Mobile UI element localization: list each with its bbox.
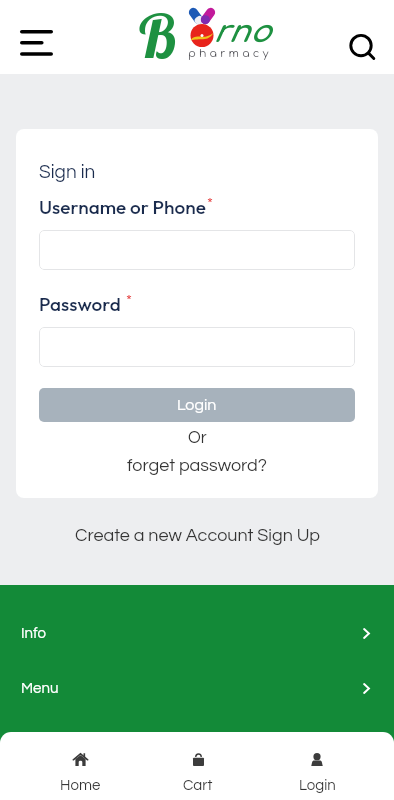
button[interactable]: Login [39,388,355,422]
staticText: * [126,292,132,308]
button[interactable]: forget password? [39,454,355,476]
button[interactable]: Create a new Account Sign Up [0,520,394,550]
staticText: Username or Phone [39,195,206,219]
staticText: Password [39,292,121,316]
button[interactable]: Home [21,732,139,800]
staticText: pharmacy [188,47,272,59]
button[interactable]: Info [0,606,394,661]
button[interactable]: Menu [0,661,394,716]
staticText: Login [177,397,217,413]
staticText: B [136,0,177,64]
staticText: Sign in [39,162,96,182]
button[interactable]: Login [258,732,376,800]
staticText: Menu [21,681,59,696]
staticText: Info [21,626,46,641]
button[interactable] [39,230,355,270]
staticText: Create a new Account Sign Up [75,526,320,545]
button[interactable]: Open navigation menu [4,7,64,67]
button[interactable]: Cart [139,732,257,800]
staticText: rno [213,15,271,50]
staticText: Cart [183,778,213,793]
staticText: forget password? [127,456,267,475]
button[interactable] [39,327,355,367]
staticText: * [207,195,213,211]
staticText: Home [60,778,101,793]
staticText: Or [188,429,207,447]
button[interactable]: Search [334,0,394,60]
staticText: Login [299,778,336,793]
